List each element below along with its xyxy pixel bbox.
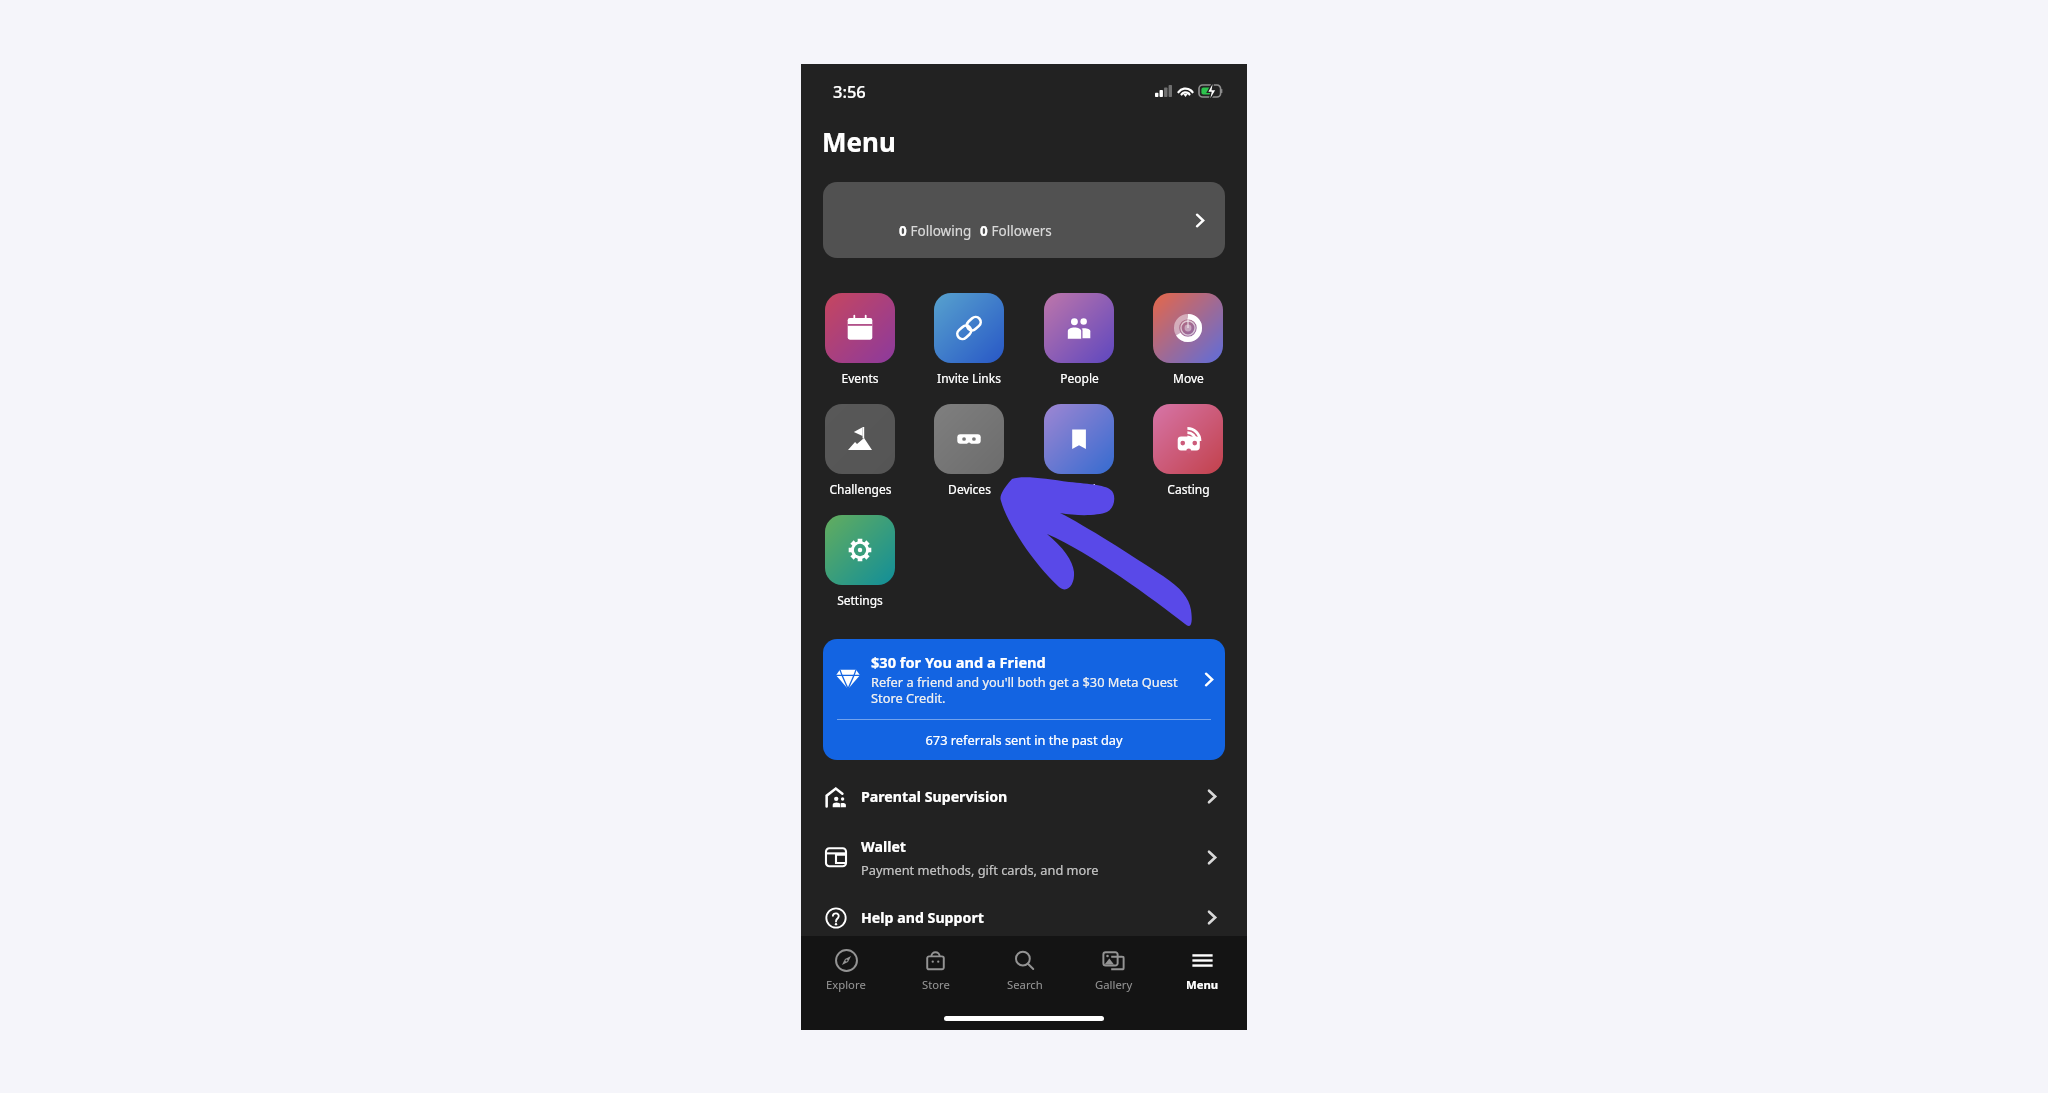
staticText: Payment methods, gift cards, and more [861,861,1099,878]
button[interactable]: Move [1153,293,1223,363]
staticText: Parental Supervision [861,787,1008,806]
button[interactable]: People [1044,293,1114,363]
staticText: Search [1007,977,1043,992]
staticText: Events [841,370,879,386]
staticText: Menu [1186,977,1219,992]
button[interactable]: Parental Supervision [801,769,1247,824]
button[interactable]: Menu [1158,936,1247,1004]
staticText: Gallery [1095,977,1133,992]
button[interactable]: Casting [1153,404,1223,474]
button[interactable]: Saved [1044,404,1114,474]
button[interactable]: Explore [801,936,891,1004]
staticText: Following [907,222,972,240]
button[interactable]: $30 for You and a Friend [823,639,1225,760]
button[interactable]: Challenges [825,404,895,474]
button[interactable]: Search [980,936,1069,1004]
staticText: Followers [988,222,1052,240]
button[interactable]: Events [825,293,895,363]
staticText: People [1060,370,1099,386]
button[interactable]: Settings [825,515,895,585]
staticText: Settings [837,592,883,608]
staticText: Menu [822,124,896,159]
staticText: Challenges [829,481,892,497]
staticText: Wallet [861,837,907,856]
button[interactable]: 0 [823,182,1225,258]
staticText: 0 [980,222,988,240]
staticText: Explore [826,977,866,992]
button[interactable]: Invite Links [934,293,1004,363]
button[interactable]: Help and Support [801,890,1247,945]
staticText: Invite Links [937,370,1001,386]
button[interactable]: Devices [934,404,1004,474]
staticText: $30 for You and a Friend [871,652,1046,672]
staticText: Saved [1062,481,1096,497]
staticText: Devices [948,481,991,497]
staticText: 0 [899,222,907,240]
button[interactable]: Gallery [1069,936,1158,1004]
staticText: Casting [1167,481,1210,497]
staticText: 673 referrals sent in the past day [823,731,1225,748]
staticText: Store [922,977,950,992]
button[interactable]: Store [891,936,980,1004]
staticText: Refer a friend and you'll both get a $30… [871,673,1198,707]
staticText: 3:56 [833,80,866,102]
button[interactable]: Wallet [801,824,1247,890]
staticText: Help and Support [861,908,984,927]
staticText: Move [1173,370,1204,386]
